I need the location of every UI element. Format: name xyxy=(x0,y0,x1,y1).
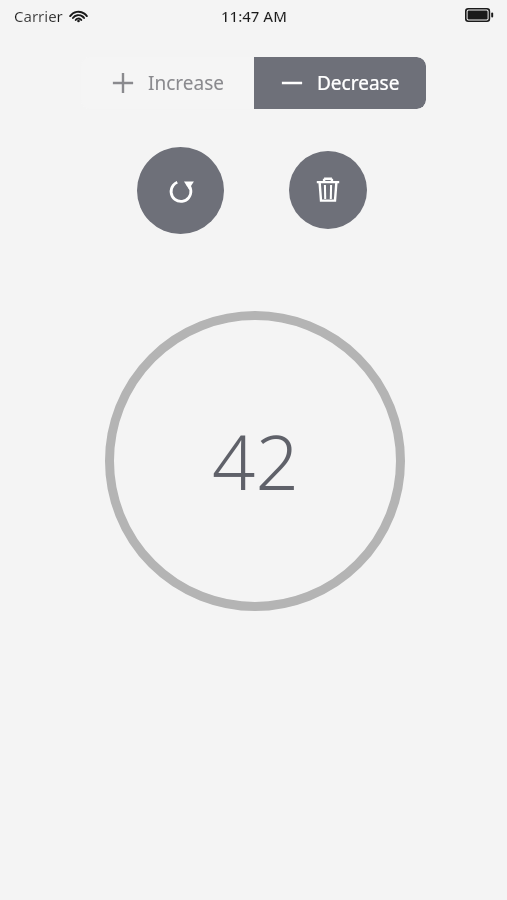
staticText: 42 xyxy=(212,409,299,513)
button[interactable]: Increase xyxy=(81,57,254,109)
button[interactable]: Reset xyxy=(137,147,224,234)
staticText: 11:47 AM xyxy=(221,6,287,26)
staticText: Increase xyxy=(148,70,224,96)
staticText: Carrier xyxy=(14,6,63,26)
button[interactable]: Decrease xyxy=(254,57,426,109)
staticText: Decrease xyxy=(317,70,400,96)
button[interactable]: Delete xyxy=(289,151,367,229)
